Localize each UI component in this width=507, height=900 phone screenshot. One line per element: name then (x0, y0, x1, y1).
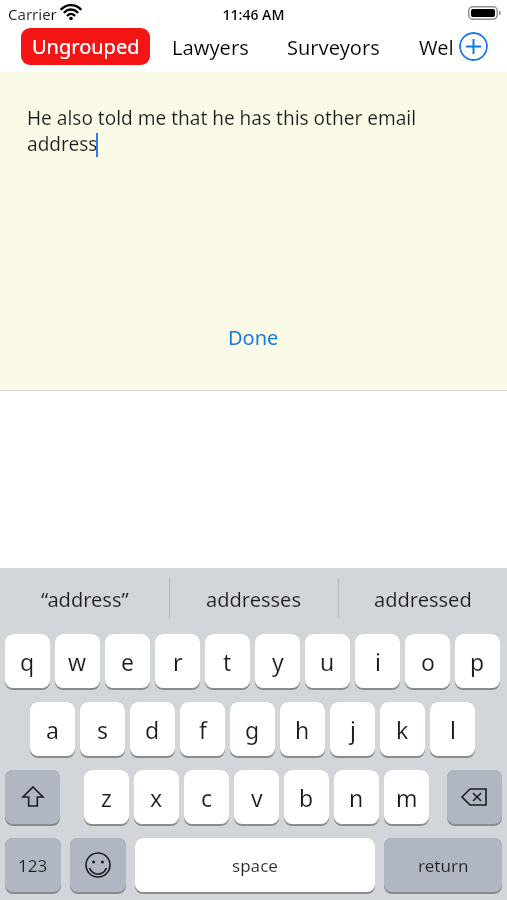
staticText: addressed (374, 586, 472, 613)
staticText: f (199, 714, 207, 745)
staticText: z (101, 782, 112, 813)
button[interactable]: w (55, 634, 100, 688)
staticText: x (150, 782, 163, 813)
button[interactable]: space (135, 838, 375, 892)
button[interactable]: return (384, 838, 502, 892)
staticText: Ungrouped (32, 33, 140, 60)
staticText: i (375, 646, 381, 677)
staticText: y (272, 646, 284, 677)
button[interactable]: Surveyors (287, 34, 380, 61)
button[interactable]: b (284, 770, 329, 824)
button[interactable] (70, 838, 126, 892)
button[interactable]: v (234, 770, 279, 824)
button[interactable] (447, 770, 502, 824)
staticText: Done (228, 324, 279, 351)
button[interactable]: q (5, 634, 50, 688)
button[interactable]: k (380, 702, 425, 756)
staticText: 123 (18, 854, 48, 877)
button[interactable]: Lawyers (172, 34, 249, 61)
button[interactable] (5, 770, 60, 824)
button[interactable]: s (80, 702, 125, 756)
staticText: a (46, 714, 59, 745)
staticText: t (223, 646, 232, 677)
button[interactable]: Ungrouped (21, 28, 150, 65)
staticText: r (173, 646, 183, 677)
button[interactable]: e (105, 634, 150, 688)
button[interactable]: x (134, 770, 179, 824)
staticText: p (470, 646, 485, 677)
button[interactable]: y (255, 634, 300, 688)
button[interactable]: d (130, 702, 175, 756)
button[interactable]: o (405, 634, 450, 688)
button[interactable]: t (205, 634, 250, 688)
button[interactable]: Wel (419, 34, 454, 61)
staticText: h (295, 714, 310, 745)
staticText: Carrier (8, 4, 57, 24)
staticText: j (350, 714, 356, 745)
button[interactable]: 123 (5, 838, 61, 892)
button[interactable]: p (455, 634, 500, 688)
button[interactable]: c (184, 770, 229, 824)
staticText: addresses (206, 586, 301, 613)
staticText: d (145, 714, 160, 745)
staticText: 11:46 AM (0, 5, 507, 24)
staticText: c (201, 782, 213, 813)
button[interactable]: j (330, 702, 375, 756)
staticText: q (20, 646, 35, 677)
staticText: “address” (41, 586, 129, 613)
staticText: space (232, 854, 278, 877)
staticText: v (251, 782, 263, 813)
staticText: g (245, 714, 260, 745)
staticText: w (68, 646, 87, 677)
staticText: He also told me that he has this other e… (27, 105, 417, 157)
staticText: return (418, 854, 469, 877)
staticText: k (396, 714, 409, 745)
button[interactable]: “address” (0, 585, 169, 613)
button[interactable]: f (180, 702, 225, 756)
button[interactable]: a (30, 702, 75, 756)
button[interactable]: m (384, 770, 429, 824)
staticText: n (349, 782, 364, 813)
button[interactable]: addressed (338, 585, 507, 613)
button[interactable]: h (280, 702, 325, 756)
staticText: l (450, 714, 456, 745)
button[interactable] (459, 32, 488, 61)
staticText: b (299, 782, 314, 813)
button[interactable]: addresses (169, 585, 338, 613)
button[interactable]: g (230, 702, 275, 756)
staticText: m (396, 782, 418, 813)
staticText: u (320, 646, 335, 677)
button[interactable]: Done (0, 324, 507, 351)
staticText: e (121, 646, 134, 677)
button[interactable]: r (155, 634, 200, 688)
button[interactable]: n (334, 770, 379, 824)
button[interactable]: l (430, 702, 475, 756)
button[interactable]: z (84, 770, 129, 824)
button[interactable]: i (355, 634, 400, 688)
staticText: s (97, 714, 109, 745)
button[interactable]: u (305, 634, 350, 688)
staticText: o (421, 646, 435, 677)
